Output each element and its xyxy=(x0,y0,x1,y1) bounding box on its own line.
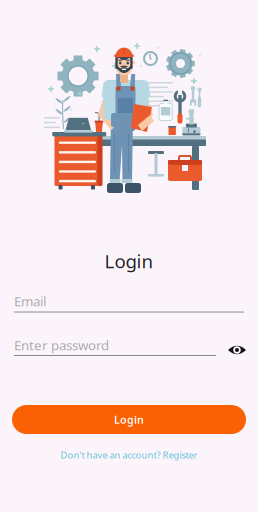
button[interactable]: Don't have an account? Register xyxy=(0,447,258,463)
staticText: Login xyxy=(114,412,144,427)
button[interactable]: Login xyxy=(12,405,246,434)
staticText: Enter password xyxy=(14,336,109,354)
staticText: Don't have an account? Register xyxy=(60,449,197,461)
staticText: Email xyxy=(14,292,46,310)
staticText: Login xyxy=(104,249,153,273)
button[interactable]: Show password xyxy=(222,335,252,365)
